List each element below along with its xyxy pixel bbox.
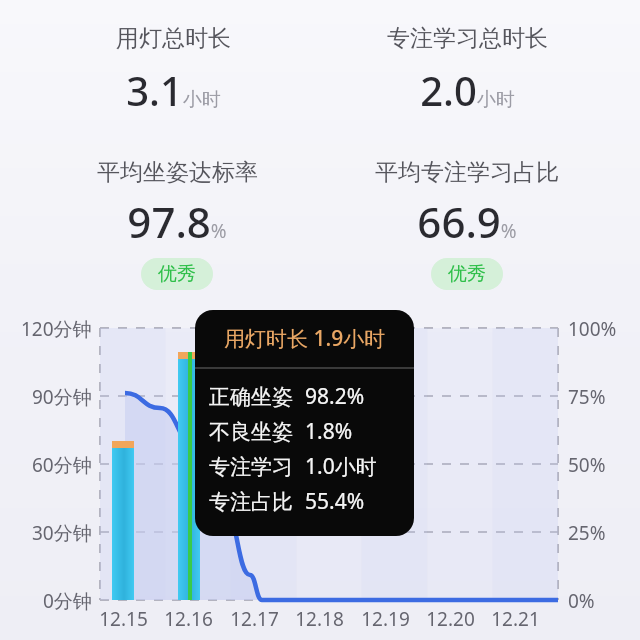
staticText: 平均专注学习占比 <box>375 158 559 187</box>
staticText: 0% <box>568 588 595 614</box>
staticText: 75% <box>568 384 606 410</box>
button[interactable]: 用灯总时长 <box>33 24 313 117</box>
staticText: 12.16 <box>164 606 213 632</box>
staticText: 50% <box>568 452 606 478</box>
button[interactable]: 12.15 <box>89 606 157 632</box>
staticText: 专注学习总时长 <box>387 24 548 53</box>
staticText: 55.4% <box>305 487 365 516</box>
button[interactable]: 优秀 <box>141 258 213 290</box>
staticText: 30分钟 <box>32 520 92 546</box>
staticText: 66.9% <box>417 193 517 250</box>
other: Weekly chart <box>0 0 640 640</box>
button[interactable]: 平均坐姿达标率 <box>27 158 327 290</box>
staticText: 12.20 <box>426 606 475 632</box>
button[interactable]: 12.20 <box>416 606 484 632</box>
staticText: 12.18 <box>295 606 344 632</box>
staticText: 60分钟 <box>32 452 92 478</box>
button[interactable]: 优秀 <box>431 258 503 290</box>
staticText: 1.0小时 <box>305 452 377 481</box>
staticText: 专注学习 <box>209 454 293 480</box>
staticText: 正确坐姿 <box>209 384 293 410</box>
button[interactable]: 12.21 <box>481 606 549 632</box>
staticText: 12.19 <box>361 606 410 632</box>
button[interactable]: 12.17 <box>220 606 288 632</box>
staticText: 3.1小时 <box>126 63 221 117</box>
staticText: 不良坐姿 <box>209 419 293 445</box>
staticText: 优秀 <box>158 262 196 286</box>
staticText: 98.2% <box>305 382 365 411</box>
staticText: 90分钟 <box>32 384 92 410</box>
button[interactable]: 用灯时长 1.9小时 <box>195 310 414 536</box>
staticText: 用灯总时长 <box>116 24 231 53</box>
staticText: 12.21 <box>491 606 540 632</box>
button[interactable]: 专注学习总时长 <box>327 24 607 117</box>
staticText: 平均坐姿达标率 <box>97 158 258 187</box>
staticText: 25% <box>568 520 606 546</box>
button[interactable]: 12.19 <box>351 606 419 632</box>
staticText: 100% <box>568 316 617 342</box>
staticText: 1.8% <box>305 417 353 446</box>
button[interactable]: 平均专注学习占比 <box>317 158 617 290</box>
staticText: 12.17 <box>230 606 279 632</box>
button[interactable]: 12.18 <box>285 606 353 632</box>
staticText: 优秀 <box>448 262 486 286</box>
button[interactable]: 12.16 <box>154 606 222 632</box>
staticText: 120分钟 <box>21 316 92 342</box>
staticText: 97.8% <box>127 193 227 250</box>
staticText: 0分钟 <box>43 588 92 614</box>
staticText: 12.15 <box>99 606 148 632</box>
staticText: 用灯时长 1.9小时 <box>224 324 386 353</box>
staticText: 专注占比 <box>209 489 293 515</box>
staticText: 2.0小时 <box>420 63 515 117</box>
